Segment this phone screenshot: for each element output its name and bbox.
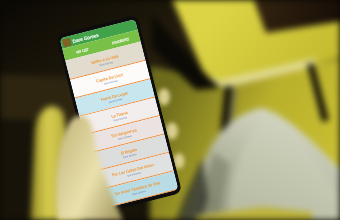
staticText: FAVORITES — [112, 36, 130, 45]
button[interactable]: Sin Amor Tambien Se Vive — [98, 171, 178, 208]
button[interactable]: Copita De Licor — [70, 61, 150, 97]
staticText: El Regalo — [120, 147, 138, 156]
staticText: Sin Verguenza — [111, 127, 137, 139]
staticText: MY LIST — [76, 46, 90, 55]
staticText: La Tirana — [111, 110, 128, 119]
button[interactable]: Milho a La Vida — [65, 41, 145, 79]
staticText: Dare Gomes — [132, 189, 146, 195]
staticText: Dare Gomes — [127, 170, 141, 177]
button[interactable]: Fuera De Lugar — [75, 79, 155, 116]
staticText: Dare Gomes — [118, 134, 132, 140]
staticText: Milho a La Vida — [91, 53, 119, 65]
button[interactable]: Dare Gomes — [61, 19, 138, 48]
button[interactable]: MY LIST — [62, 39, 103, 61]
staticText: Dare Gomes — [113, 115, 127, 122]
staticText: Dare Gomes — [122, 152, 137, 158]
staticText: Por Las Calles Del Amor — [111, 162, 155, 178]
staticText: Copita De Licor — [96, 72, 124, 84]
button[interactable]: Sin Verguenza — [84, 116, 164, 153]
staticText: Dare Gomes — [108, 97, 123, 103]
staticText: Fuera De Lugar — [100, 90, 129, 102]
button[interactable]: Por Las Calles Del Amor — [94, 153, 174, 189]
staticText: Dare Gomes — [99, 60, 113, 66]
button[interactable]: FAVORITES — [100, 30, 141, 51]
staticText: Sin Amor Tambien Se Vive — [114, 180, 162, 196]
button[interactable]: La Tirana — [79, 98, 159, 134]
staticText: Dare Gomes — [104, 78, 118, 85]
staticText: Dare Gomes — [72, 32, 99, 44]
button[interactable]: El Regalo — [89, 134, 169, 171]
